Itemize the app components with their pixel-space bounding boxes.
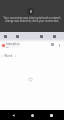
staticText: Your connection was interrupted and a ne…	[0, 16, 64, 22]
button[interactable]: example.com	[1, 42, 20, 48]
button[interactable]: Back	[7, 110, 19, 120]
button[interactable]: Share	[52, 34, 56, 38]
button[interactable]: Site icon	[27, 8, 34, 15]
button[interactable]: ‹ Week ›	[1, 54, 16, 58]
button[interactable]: Forward	[15, 34, 19, 38]
staticText: example.com	[6, 42, 20, 48]
button[interactable]: Back	[3, 34, 7, 38]
button[interactable]: Tabs	[51, 43, 54, 46]
button[interactable]: Bookmark	[39, 34, 43, 38]
button[interactable]: More options	[56, 42, 62, 48]
button[interactable]: Recent apps	[45, 110, 57, 120]
button[interactable]: Home	[26, 110, 38, 120]
